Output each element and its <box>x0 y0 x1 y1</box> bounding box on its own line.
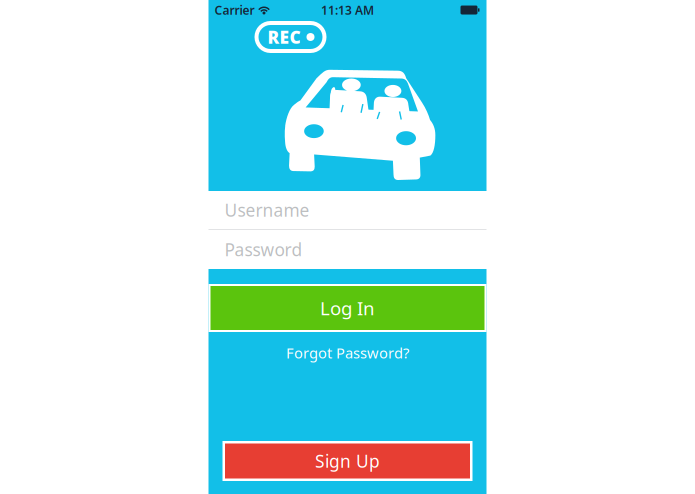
staticText: Password <box>224 238 302 261</box>
staticText: Sign Up <box>315 449 380 472</box>
staticText: Carrier <box>214 2 254 18</box>
staticText: Username <box>224 198 309 221</box>
button[interactable]: Forgot Password? <box>276 339 419 366</box>
staticText: Forgot Password? <box>286 343 409 362</box>
staticText: REC <box>267 25 300 48</box>
staticText: Log In <box>320 296 375 320</box>
button[interactable]: Sign Up <box>222 441 472 481</box>
button[interactable]: Log In <box>208 284 486 332</box>
staticText: 11:13 AM <box>321 2 374 18</box>
